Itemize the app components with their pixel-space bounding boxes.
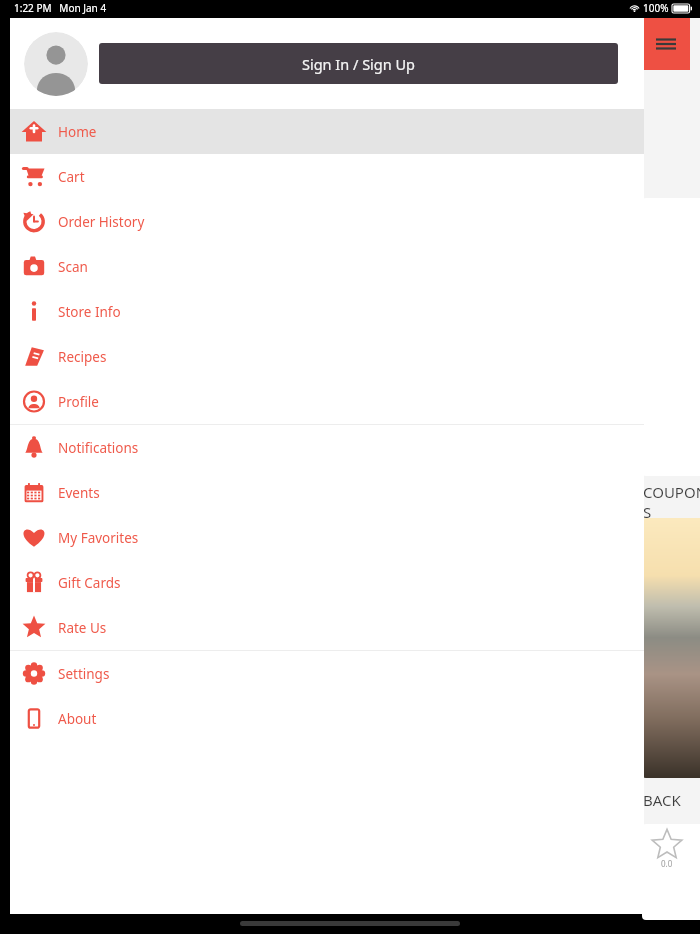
staticText: Profile: [58, 393, 99, 411]
button[interactable]: Events: [10, 470, 644, 515]
staticText: Gift Cards: [58, 574, 121, 592]
staticText: Recipes: [58, 348, 107, 366]
button[interactable]: Sign In / Sign Up: [99, 43, 618, 84]
staticText: Order History: [58, 213, 145, 231]
staticText: Sign In / Sign Up: [302, 54, 416, 74]
staticText: 0.0: [661, 858, 673, 869]
button[interactable]: Profile: [10, 379, 644, 424]
staticText: Notifications: [58, 439, 139, 457]
button[interactable]: Notifications: [10, 425, 644, 470]
staticText: Events: [58, 484, 100, 502]
button[interactable]: Gift Cards: [10, 560, 644, 605]
staticText: Cart: [58, 168, 85, 186]
staticText: About: [58, 710, 97, 728]
staticText: Settings: [58, 665, 110, 683]
button[interactable]: Recipes: [10, 334, 644, 379]
staticText: My Favorites: [58, 529, 139, 547]
staticText: BACK: [643, 790, 681, 810]
staticText: Home: [58, 123, 97, 141]
staticText: Rate Us: [58, 619, 107, 637]
staticText: Store Info: [58, 303, 121, 321]
button[interactable]: Order History: [10, 199, 644, 244]
button[interactable]: Open navigation menu: [641, 18, 690, 70]
button[interactable]: Settings: [10, 651, 644, 696]
staticText: 1:22 PM Mon Jan 4: [14, 1, 107, 15]
button[interactable]: My Favorites: [10, 515, 644, 560]
button[interactable]: Scan: [10, 244, 644, 289]
button[interactable]: Cart: [10, 154, 644, 199]
button[interactable]: About: [10, 696, 644, 741]
button[interactable]: Store Info: [10, 289, 644, 334]
button[interactable]: [24, 32, 88, 96]
button[interactable]: Rate Us: [10, 605, 644, 650]
staticText: 100%: [643, 1, 669, 15]
staticText: Scan: [58, 258, 88, 276]
staticText: COUPONS: [643, 482, 700, 522]
button[interactable]: Home: [10, 109, 644, 154]
